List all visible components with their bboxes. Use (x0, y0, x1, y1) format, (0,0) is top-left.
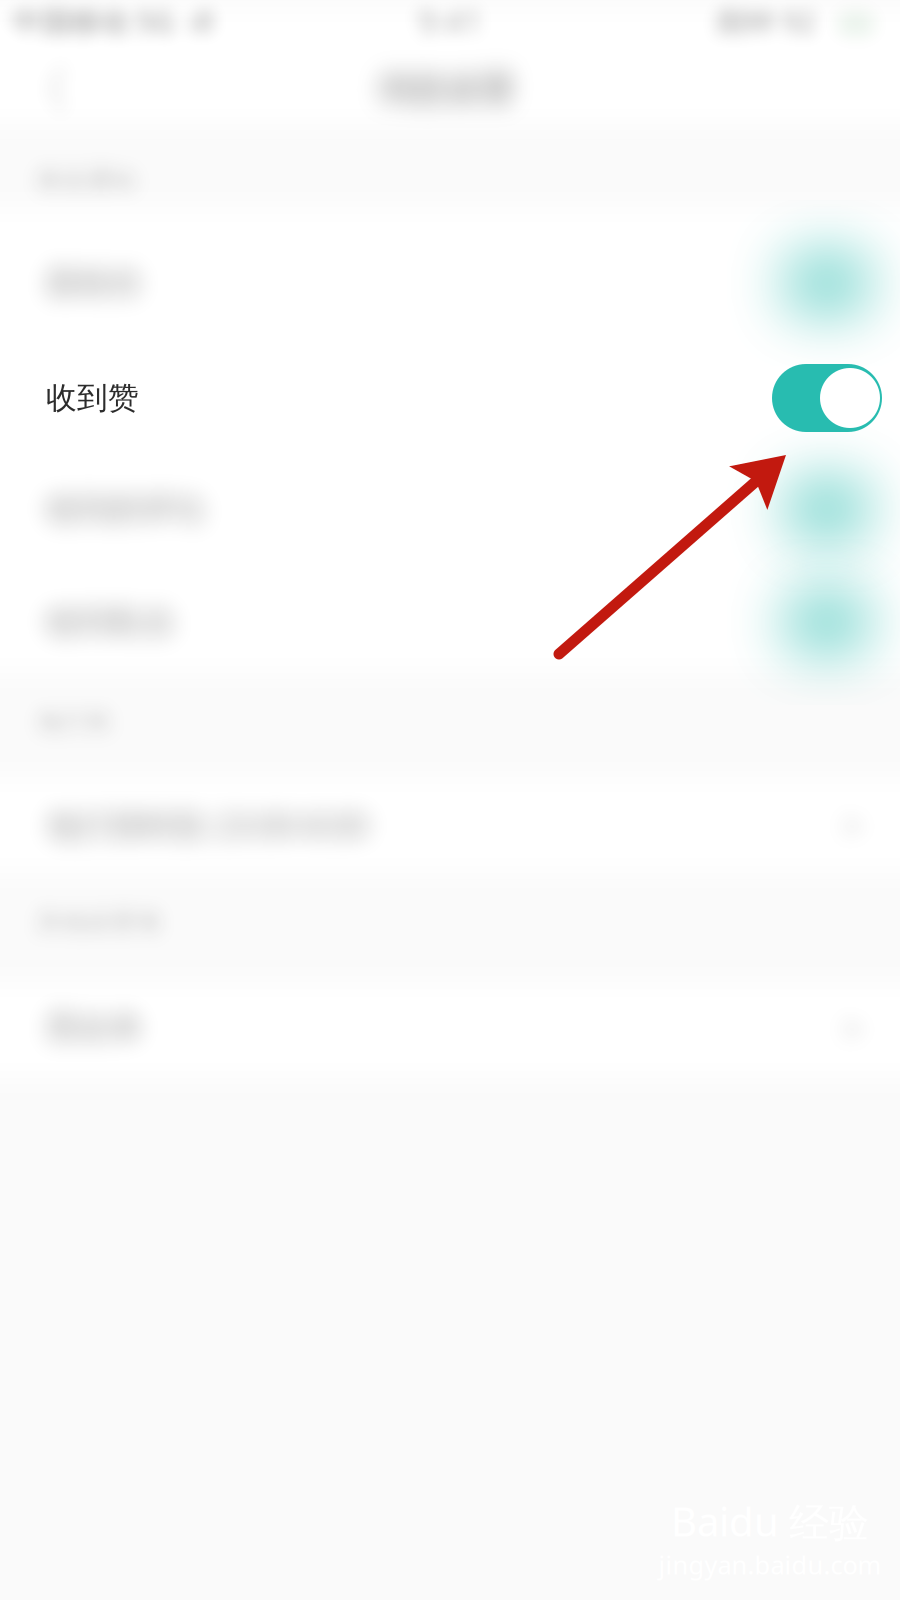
button[interactable]: 收到赞 (0, 341, 900, 454)
button[interactable]: 新粉丝 (0, 226, 900, 339)
button[interactable]: 免打扰时段 (0, 770, 900, 880)
button[interactable]: 收到私信 (0, 565, 900, 678)
button[interactable]: 收到的评论 (0, 452, 900, 565)
button[interactable]: 黑名单 (0, 973, 900, 1083)
staticText: 收到赞 (46, 379, 139, 417)
